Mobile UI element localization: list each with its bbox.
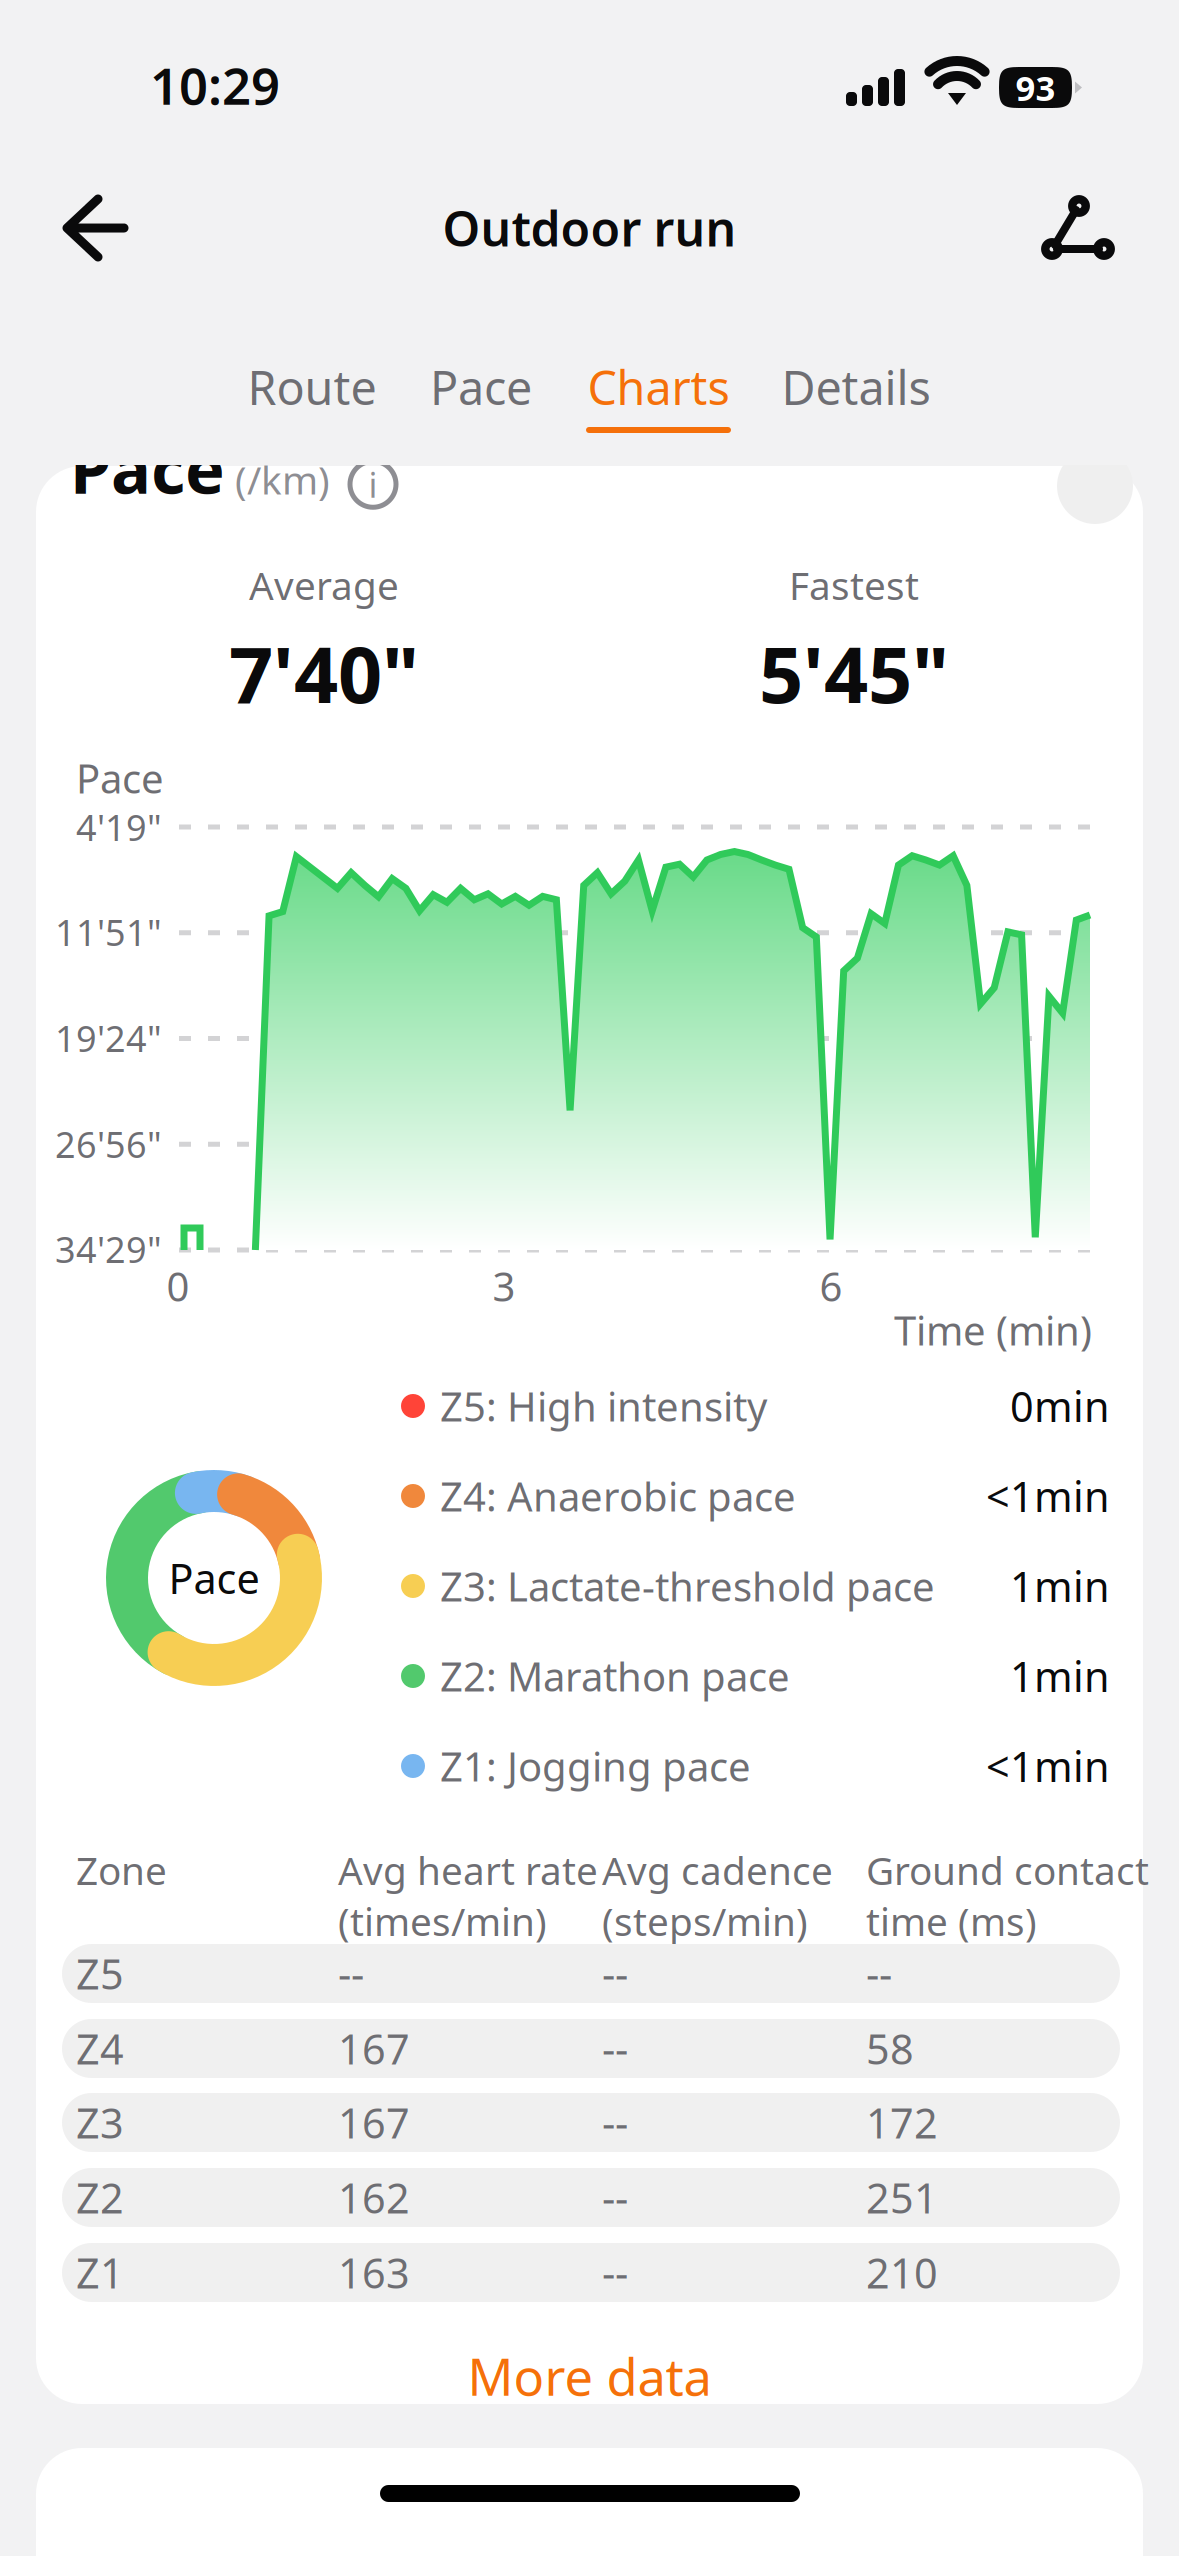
- staticText: 251: [866, 2170, 938, 2225]
- staticText: 11'51": [55, 908, 162, 956]
- staticText: --: [602, 2245, 628, 2300]
- button[interactable]: Pace: [400, 340, 562, 470]
- staticText: Route: [247, 356, 376, 418]
- staticText: Time (min): [894, 1303, 1092, 1356]
- staticText: Z1: Jogging pace: [440, 1739, 751, 1792]
- staticText: Z5: High intensity: [440, 1379, 767, 1432]
- staticText: 163: [338, 2245, 410, 2300]
- staticText: 167: [338, 2021, 410, 2076]
- staticText: Ground contact: [866, 1844, 1149, 1896]
- staticText: Outdoor run: [442, 196, 736, 260]
- staticText: 210: [866, 2245, 938, 2300]
- staticText: Fastest: [789, 559, 919, 611]
- staticText: Z4: [76, 2021, 124, 2076]
- staticText: Avg heart rate: [338, 1844, 598, 1896]
- staticText: --: [338, 1946, 364, 2001]
- staticText: Z1: [76, 2245, 124, 2300]
- staticText: (steps/min): [602, 1895, 808, 1947]
- staticText: --: [602, 2170, 628, 2225]
- staticText: 167: [338, 2095, 410, 2150]
- staticText: Zone: [76, 1844, 167, 1896]
- staticText: 1min: [1010, 1649, 1110, 1703]
- staticText: 3: [492, 1259, 515, 1312]
- staticText: <1min: [986, 1739, 1110, 1793]
- staticText: Pace: [168, 1551, 259, 1605]
- button[interactable]: Charts: [558, 340, 759, 470]
- button[interactable]: More data: [36, 2316, 1143, 2436]
- staticText: 1min: [1010, 1559, 1110, 1613]
- staticText: 162: [338, 2170, 410, 2225]
- staticText: Details: [781, 356, 930, 418]
- staticText: 5'45": [759, 622, 949, 724]
- staticText: 10:29: [150, 51, 280, 119]
- staticText: Z2: Marathon pace: [440, 1649, 790, 1702]
- staticText: --: [602, 2021, 628, 2076]
- staticText: 172: [866, 2095, 938, 2150]
- button[interactable]: Details: [753, 340, 959, 470]
- staticText: 93: [1015, 64, 1055, 110]
- button[interactable]: Back: [46, 190, 146, 266]
- staticText: 7'40": [229, 622, 419, 724]
- staticText: 26'56": [55, 1120, 162, 1168]
- staticText: 6: [819, 1259, 842, 1312]
- staticText: Z2: [76, 2170, 124, 2225]
- staticText: More data: [467, 2342, 711, 2410]
- staticText: 0: [166, 1259, 189, 1312]
- staticText: --: [866, 1946, 892, 2001]
- staticText: (/km): [225, 454, 330, 505]
- staticText: 58: [866, 2021, 914, 2076]
- staticText: 19'24": [55, 1014, 162, 1062]
- staticText: i: [368, 461, 377, 507]
- button[interactable]: Route: [221, 340, 403, 470]
- staticText: 34'29": [55, 1225, 162, 1273]
- staticText: Z3: [76, 2095, 124, 2150]
- staticText: time (ms): [866, 1895, 1037, 1947]
- staticText: Average: [249, 559, 399, 611]
- staticText: Pace: [70, 424, 225, 512]
- staticText: 4'19": [76, 803, 162, 851]
- button[interactable]: Share: [1028, 188, 1128, 268]
- staticText: Z3: Lactate-threshold pace: [440, 1559, 935, 1612]
- staticText: Pace: [430, 356, 532, 418]
- staticText: <1min: [986, 1469, 1110, 1523]
- staticText: Avg cadence: [602, 1844, 833, 1896]
- staticText: --: [602, 2095, 628, 2150]
- staticText: --: [602, 1946, 628, 2001]
- staticText: 0min: [1010, 1379, 1110, 1433]
- staticText: Charts: [587, 356, 729, 418]
- staticText: Z4: Anaerobic pace: [440, 1469, 796, 1522]
- staticText: (times/min): [338, 1895, 547, 1947]
- staticText: Pace: [76, 751, 164, 804]
- staticText: Z5: [76, 1946, 124, 2001]
